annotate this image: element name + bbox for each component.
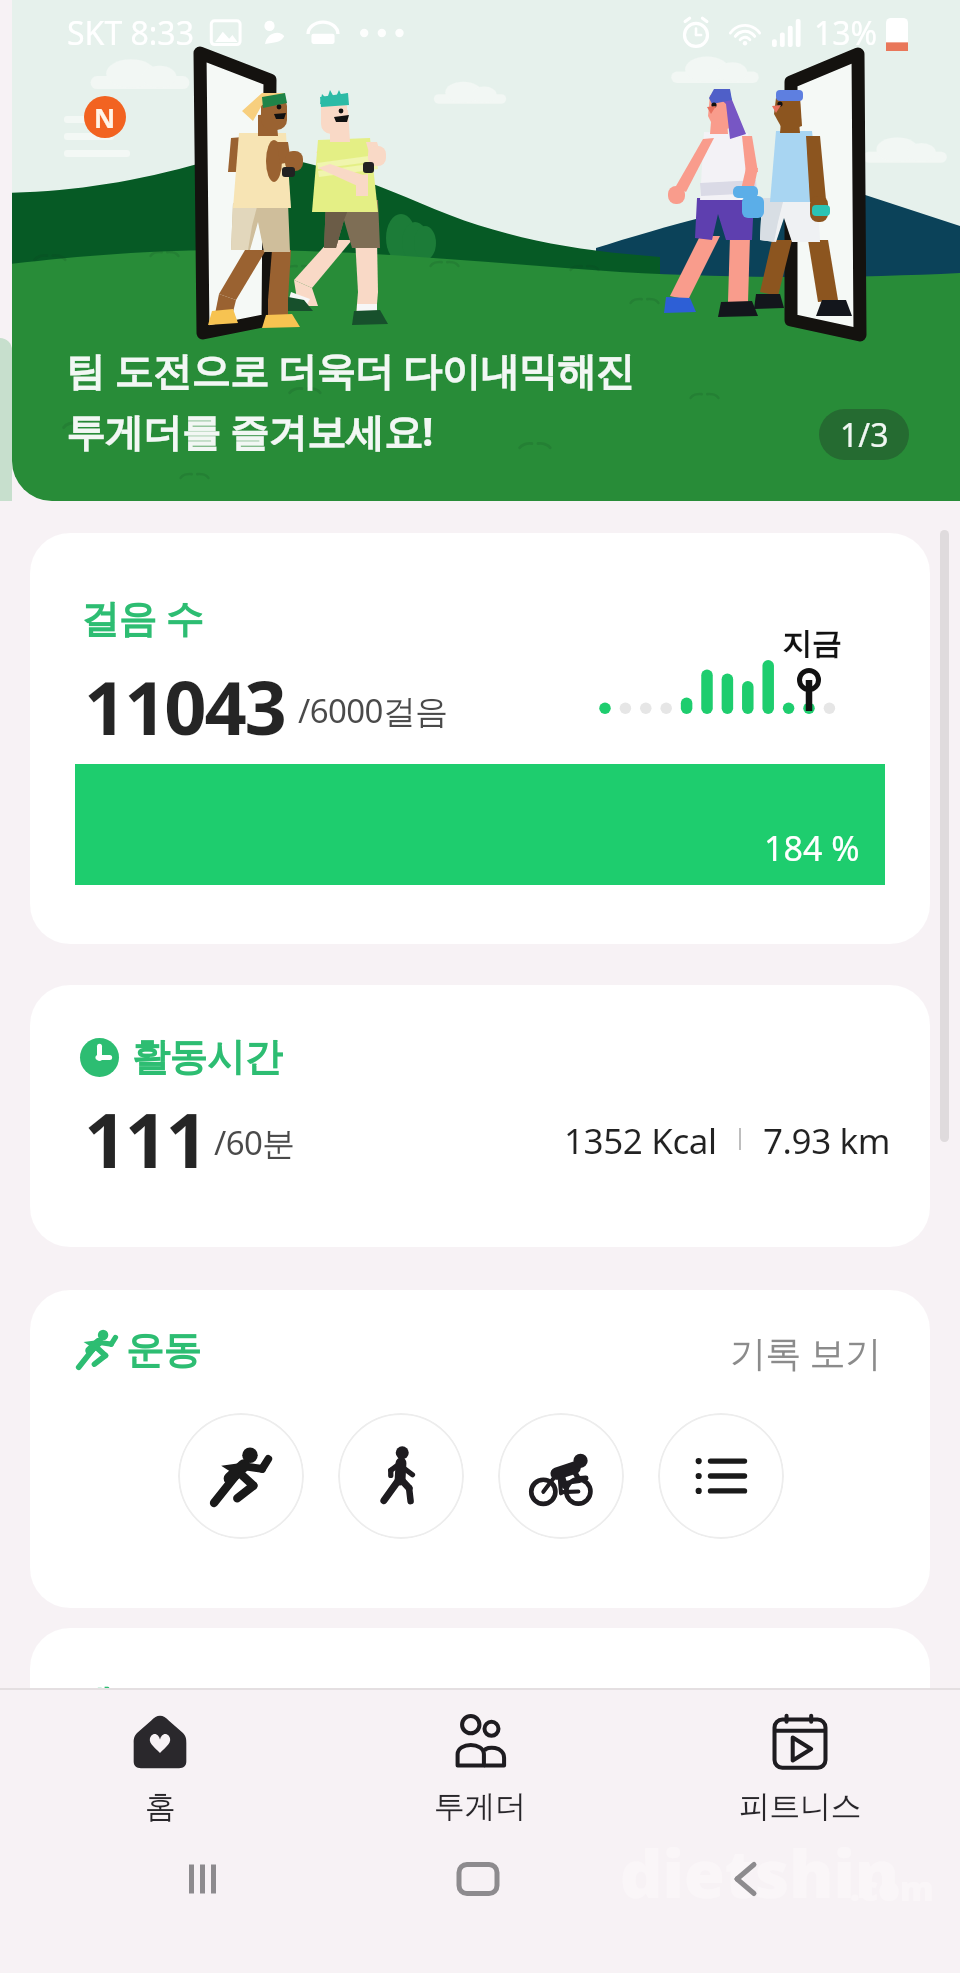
button[interactable]: Walk	[338, 1413, 464, 1539]
staticText: 팀 도전으로 더욱더 다이내믹해진	[66, 343, 634, 396]
staticText: 1352 Kcal	[564, 1117, 717, 1165]
staticText: 피트니스	[739, 1787, 862, 1826]
staticText: 13%	[814, 11, 878, 55]
staticText: 걸음 수	[81, 591, 203, 643]
staticText: SKT 8:33	[67, 11, 194, 55]
other: Recents	[186, 1854, 236, 1904]
staticText: 11043	[84, 656, 285, 757]
staticText: 활동시간	[132, 1033, 282, 1081]
staticText: 184 %	[764, 825, 860, 871]
button[interactable]: 걸음 수	[30, 533, 930, 944]
staticText: 투게더를 즐겨보세요!	[66, 404, 433, 457]
staticText: 1/3	[840, 413, 889, 457]
staticText: 111	[84, 1088, 207, 1190]
button[interactable]: 기록 보기	[730, 1328, 881, 1377]
button[interactable]: 피트니스	[640, 1690, 960, 1827]
staticText: 7.93 km	[763, 1117, 891, 1165]
staticText: /60분	[214, 1120, 295, 1165]
button[interactable]: 투게더	[320, 1690, 640, 1827]
staticText: /6000걸음	[298, 688, 448, 733]
staticText: 투게더	[434, 1787, 526, 1826]
button[interactable]: Run	[178, 1413, 304, 1539]
staticText: N	[94, 100, 116, 135]
button[interactable]: More exercises	[658, 1413, 784, 1539]
staticText: 기록 보기	[730, 1328, 881, 1377]
staticText: dietshin	[620, 1827, 900, 1917]
other: Back	[728, 1854, 778, 1904]
button[interactable]: 활동시간	[30, 985, 930, 1247]
staticText: 체중	[75, 1680, 150, 1728]
staticText: 지금	[782, 625, 842, 663]
staticText: 운동	[126, 1326, 201, 1374]
staticText: 홈	[145, 1787, 176, 1826]
button[interactable]: 홈	[0, 1690, 320, 1827]
button[interactable]: Cycle	[498, 1413, 624, 1539]
other: Home	[455, 1854, 505, 1904]
